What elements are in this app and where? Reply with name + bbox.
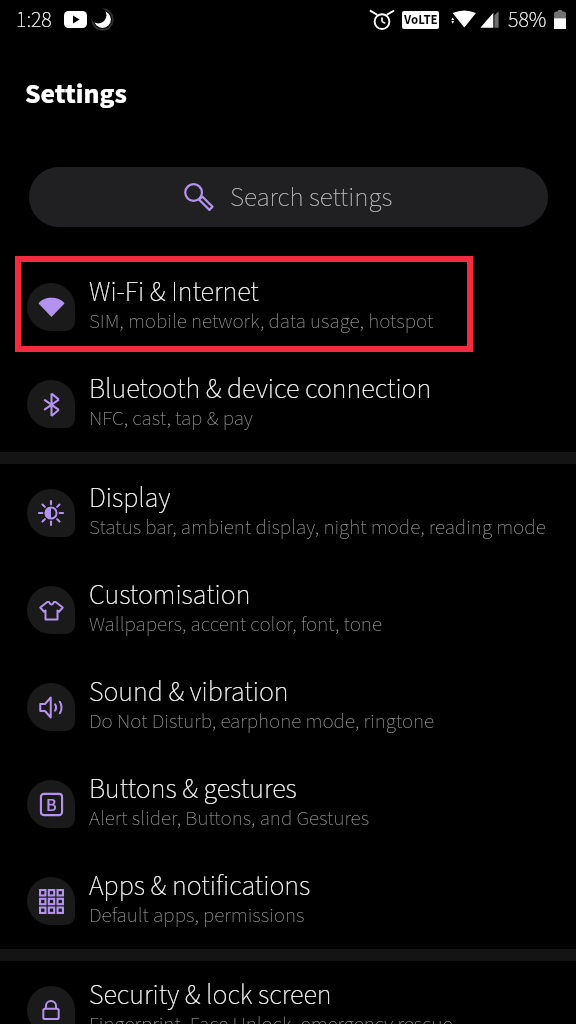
button[interactable]: Buttons and gestures [0, 755, 576, 852]
button[interactable]: Apps and notifications [0, 852, 576, 949]
staticText: B [46, 793, 57, 816]
staticText: 1:28 [16, 4, 52, 35]
other: Wi-Fi and Internet [27, 283, 75, 331]
staticText: Apps & notifications [89, 866, 311, 906]
staticText: Status bar, ambient display, night mode,… [89, 512, 546, 542]
staticText: Customisation [89, 575, 251, 615]
staticText: Default apps, permissions [89, 900, 305, 930]
staticText: Wi-Fi & Internet [89, 272, 259, 312]
staticText: Alert slider, Buttons, and Gestures [89, 803, 370, 833]
staticText: 58% [508, 4, 547, 35]
button[interactable]: Wi-Fi and Internet [0, 258, 576, 355]
other: Buttons and gestures [27, 780, 75, 828]
staticText: Settings [25, 74, 127, 114]
button[interactable]: Security and lock screen [0, 961, 576, 1024]
other: Apps and notifications [27, 877, 75, 925]
staticText: Bluetooth & device connection [89, 369, 432, 409]
staticText: Wallpapers, accent color, font, tone [89, 609, 382, 639]
staticText: Search settings [230, 178, 393, 216]
button[interactable]: Display [0, 464, 576, 561]
other: Security and lock screen [27, 986, 75, 1024]
button[interactable]: Customisation [0, 561, 576, 658]
staticText: Sound & vibration [89, 672, 289, 712]
button[interactable]: Search settings [29, 167, 548, 227]
button[interactable]: Sound and vibration [0, 658, 576, 755]
staticText: VoLTE [404, 11, 438, 29]
staticText: Buttons & gestures [89, 769, 297, 809]
other: Sound and vibration [27, 683, 75, 731]
staticText: Display [89, 478, 171, 518]
staticText: NFC, cast, tap & pay [89, 403, 253, 433]
staticText: Do Not Disturb, earphone mode, ringtone [89, 706, 435, 736]
staticText: Fingerprint, Face Unlock, emergency resc… [89, 1009, 453, 1024]
button[interactable]: Bluetooth and device connection [0, 355, 576, 452]
other: Display [27, 489, 75, 537]
staticText: SIM, mobile network, data usage, hotspot [89, 306, 434, 336]
staticText: Security & lock screen [89, 975, 332, 1015]
other: Customisation [27, 586, 75, 634]
other: Bluetooth and device connection [27, 380, 75, 428]
